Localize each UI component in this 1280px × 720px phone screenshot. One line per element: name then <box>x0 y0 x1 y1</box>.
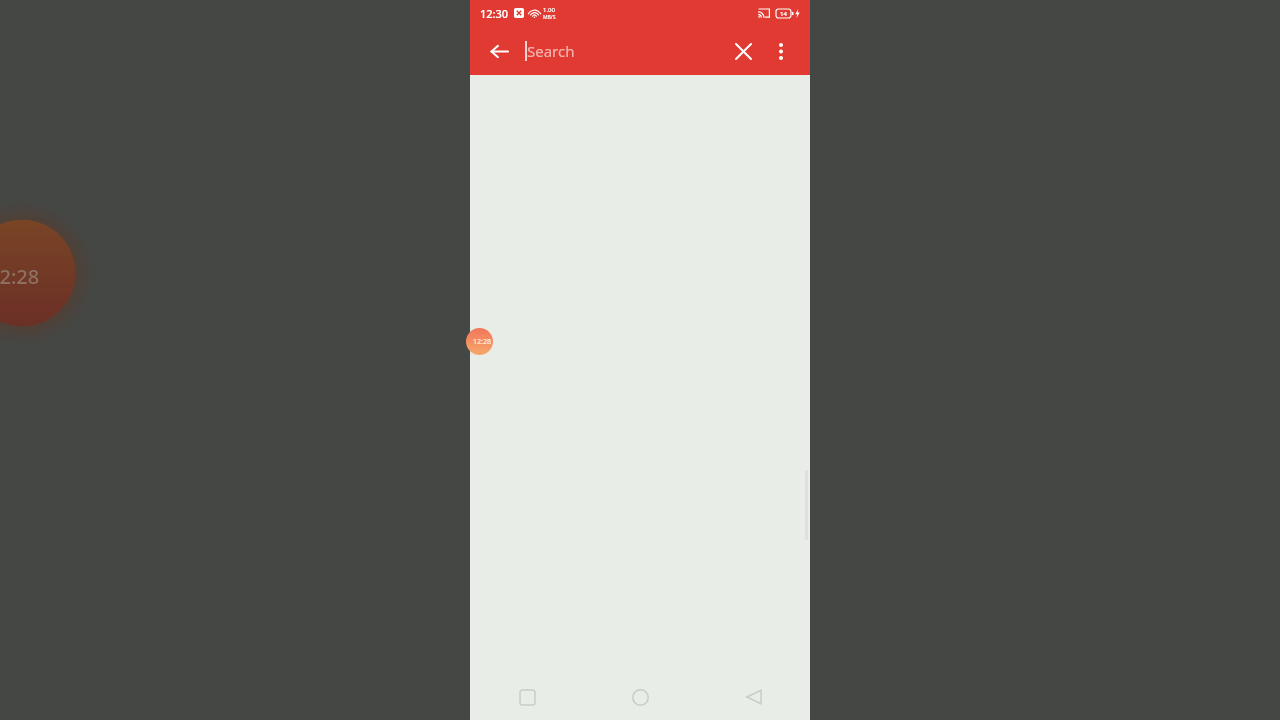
button[interactable]: Search <box>525 26 726 75</box>
button[interactable]: Recent apps <box>470 674 584 720</box>
button[interactable]: Navigate up <box>482 34 516 68</box>
button[interactable]: More options <box>764 34 798 68</box>
staticText: Search <box>527 41 575 61</box>
button[interactable]: Clear search <box>726 34 760 68</box>
button[interactable]: Home <box>584 674 697 720</box>
button[interactable]: 12:28 <box>466 328 493 355</box>
button[interactable]: Back <box>697 674 810 720</box>
staticText: 14 <box>780 10 787 18</box>
staticText: 1.00 <box>543 6 555 14</box>
staticText: 12:28 <box>0 263 40 290</box>
staticText: 12:30 <box>480 6 509 21</box>
staticText: 12:28 <box>473 337 491 347</box>
staticText: MB/S <box>543 14 556 21</box>
